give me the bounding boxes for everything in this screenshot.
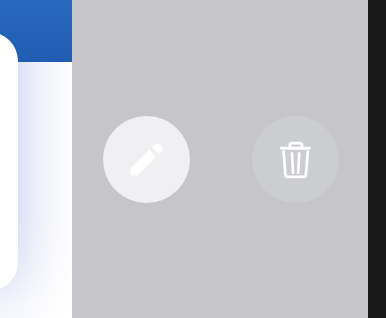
button[interactable]: Delete bbox=[252, 116, 339, 203]
button[interactable]: Edit bbox=[103, 116, 190, 203]
